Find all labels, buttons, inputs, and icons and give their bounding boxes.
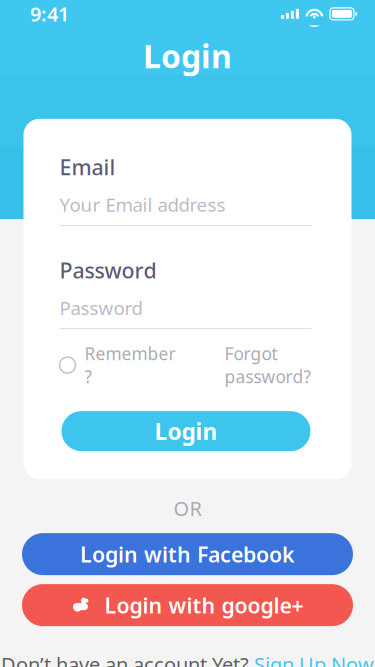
staticText: Forgot password? xyxy=(224,342,311,388)
staticText: Don’t have an account Yet? xyxy=(1,651,249,667)
staticText: Password xyxy=(59,256,156,284)
staticText: Login xyxy=(143,35,232,77)
staticText: Login with google+ xyxy=(104,591,303,619)
button[interactable]: Sign Up Now xyxy=(254,651,374,667)
staticText: Your Email address xyxy=(59,192,225,217)
staticText: Login with Facebook xyxy=(80,540,295,568)
staticText: Email xyxy=(59,153,115,181)
staticText: OR xyxy=(173,495,201,521)
staticText: Remember? xyxy=(84,342,175,388)
button[interactable]: Forgot password? xyxy=(224,342,311,388)
staticText: Password xyxy=(59,295,142,320)
button[interactable]: Login with Facebook xyxy=(22,533,353,575)
button[interactable]: Login with google+ xyxy=(22,584,353,626)
button[interactable]: Remember? xyxy=(59,342,175,388)
staticText: 9:41 xyxy=(30,1,69,27)
button[interactable]: Login xyxy=(61,411,310,451)
staticText: Login xyxy=(154,416,217,446)
staticText: Sign Up Now xyxy=(254,651,374,667)
